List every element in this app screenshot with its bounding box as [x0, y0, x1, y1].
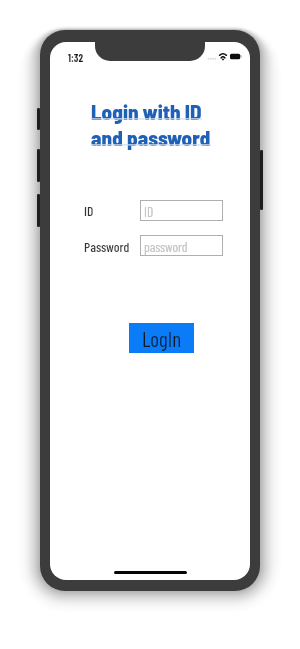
staticText: and password — [91, 125, 211, 150]
button[interactable]: password — [140, 235, 223, 256]
staticText: LogIn — [142, 326, 182, 351]
staticText: ID — [84, 202, 94, 218]
staticText: Login with ID — [91, 99, 202, 124]
staticText: 1:32 — [68, 51, 84, 64]
button[interactable]: ID — [140, 200, 223, 221]
staticText: password — [144, 238, 188, 254]
other: Status icons — [205, 51, 247, 63]
staticText: ID — [144, 203, 154, 219]
button[interactable]: LogIn — [129, 323, 194, 353]
staticText: Password — [84, 238, 130, 254]
